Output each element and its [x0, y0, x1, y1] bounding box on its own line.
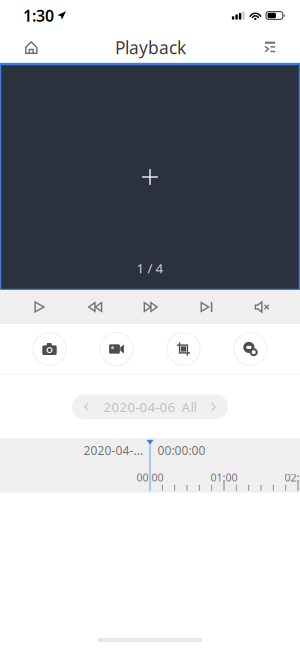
staticText: 00:00:00	[157, 442, 205, 458]
button[interactable]: Play	[22, 290, 56, 324]
button[interactable]: Home	[25, 31, 63, 64]
staticText: 00:00	[136, 470, 163, 484]
staticText: Playback	[115, 36, 186, 59]
staticText: 02:00	[284, 470, 300, 484]
button[interactable]: Fast forward	[134, 290, 168, 324]
staticText: 01:00	[210, 470, 237, 484]
staticText: 1:30	[23, 5, 54, 26]
button[interactable]: Next frame	[189, 290, 223, 324]
button[interactable]: Record	[94, 327, 138, 371]
button[interactable]: Snapshot	[27, 327, 71, 371]
button[interactable]: Digital zoom	[161, 327, 205, 371]
button[interactable]: Mute	[245, 290, 279, 324]
button[interactable]: Rewind	[78, 290, 112, 324]
button[interactable]: Two-way talk	[228, 327, 272, 371]
button[interactable]: Device list	[238, 31, 276, 64]
button[interactable]: 2020-04-06 All	[72, 394, 228, 419]
staticText: 1 / 4	[136, 259, 163, 277]
staticText: 2020-04-…	[83, 442, 142, 458]
staticText: 2020-04-06 All	[103, 398, 196, 416]
